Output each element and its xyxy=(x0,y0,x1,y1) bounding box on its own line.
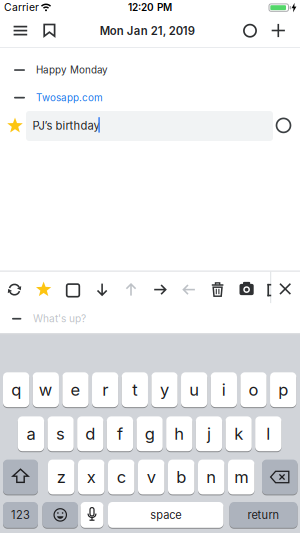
button[interactable]: Move up xyxy=(118,277,144,303)
button[interactable]: e xyxy=(62,372,89,407)
button[interactable]: c xyxy=(108,460,134,494)
button[interactable]: x xyxy=(78,460,104,494)
staticText: h xyxy=(174,424,184,444)
staticText: PJ’s birthday xyxy=(32,119,99,132)
staticText: q xyxy=(11,380,21,400)
button[interactable]: Delete xyxy=(262,460,297,494)
button[interactable]: Star xyxy=(31,277,57,303)
button[interactable]: Delete xyxy=(205,277,231,303)
staticText: 123 xyxy=(11,508,30,522)
staticText: u xyxy=(189,380,199,400)
button[interactable]: Menu xyxy=(9,20,31,42)
button[interactable]: Outdent xyxy=(176,277,202,303)
staticText: j xyxy=(207,424,211,444)
button[interactable]: i xyxy=(211,372,237,407)
staticText: y xyxy=(160,380,169,400)
button[interactable]: Twosapp.com xyxy=(36,90,106,106)
staticText: e xyxy=(70,380,80,400)
button[interactable]: Emoji xyxy=(42,502,78,528)
staticText: space xyxy=(150,508,181,522)
staticText: r xyxy=(102,380,108,400)
button[interactable]: Camera xyxy=(234,277,260,303)
staticText: d xyxy=(85,424,95,444)
staticText: c xyxy=(117,467,126,487)
button[interactable]: m xyxy=(228,460,254,494)
button[interactable]: o xyxy=(240,372,267,407)
button[interactable]: 123 xyxy=(3,502,38,528)
staticText: Carrier xyxy=(4,1,39,14)
button[interactable]: n xyxy=(198,460,224,494)
staticText: s xyxy=(56,424,65,444)
staticText: Happy Monday xyxy=(36,64,108,76)
button[interactable]: h xyxy=(166,416,192,451)
button[interactable]: y xyxy=(151,372,178,407)
button[interactable]: v xyxy=(138,460,164,494)
button[interactable]: Shift xyxy=(3,460,38,494)
staticText: l xyxy=(266,424,270,444)
button[interactable]: Starred xyxy=(6,117,24,135)
staticText: m xyxy=(234,467,248,487)
button[interactable]: l xyxy=(255,416,281,451)
button[interactable]: g xyxy=(136,416,163,451)
button[interactable]: j xyxy=(196,416,222,451)
button[interactable]: space xyxy=(108,502,223,528)
button[interactable]: z xyxy=(48,460,74,494)
staticText: t xyxy=(132,380,137,400)
staticText: Twosapp.com xyxy=(36,92,103,103)
button[interactable]: w xyxy=(33,372,59,407)
staticText: f xyxy=(117,424,123,444)
staticText: What's up? xyxy=(33,312,86,325)
button[interactable]: a xyxy=(18,416,44,451)
button[interactable]: Add circle xyxy=(239,20,261,42)
staticText: 12:20 PM xyxy=(128,1,172,13)
staticText: a xyxy=(26,424,35,444)
button[interactable]: Sync xyxy=(1,277,27,303)
button[interactable]: u xyxy=(181,372,207,407)
staticText: o xyxy=(248,380,258,400)
staticText: k xyxy=(234,424,243,444)
staticText: return xyxy=(247,508,279,522)
button[interactable]: Dictate xyxy=(80,502,103,528)
button[interactable]: q xyxy=(3,372,29,407)
button[interactable]: Move down xyxy=(89,277,115,303)
button[interactable]: p xyxy=(270,372,296,407)
staticText: b xyxy=(176,467,186,487)
button[interactable]: k xyxy=(225,416,252,451)
button[interactable]: d xyxy=(77,416,103,451)
staticText: g xyxy=(145,424,155,444)
staticText: i xyxy=(222,380,226,400)
staticText: v xyxy=(147,467,156,487)
button[interactable]: Complete xyxy=(274,116,292,134)
button[interactable]: Add xyxy=(267,19,289,41)
button[interactable]: Bookmarks xyxy=(38,19,60,41)
staticText: x xyxy=(87,467,96,487)
button[interactable]: Dismiss keyboard xyxy=(272,276,298,302)
staticText: n xyxy=(206,467,216,487)
staticText: z xyxy=(57,467,66,487)
staticText: p xyxy=(278,380,288,400)
button[interactable]: Checkbox xyxy=(60,277,86,303)
button[interactable]: s xyxy=(47,416,74,451)
button[interactable]: f xyxy=(107,416,133,451)
staticText: Mon Jan 21, 2019 xyxy=(100,24,195,38)
button[interactable]: r xyxy=(92,372,118,407)
button[interactable]: t xyxy=(122,372,148,407)
button[interactable]: b xyxy=(168,460,194,494)
button[interactable]: Indent xyxy=(147,277,173,303)
button[interactable]: return xyxy=(229,502,297,528)
staticText: w xyxy=(39,380,53,400)
